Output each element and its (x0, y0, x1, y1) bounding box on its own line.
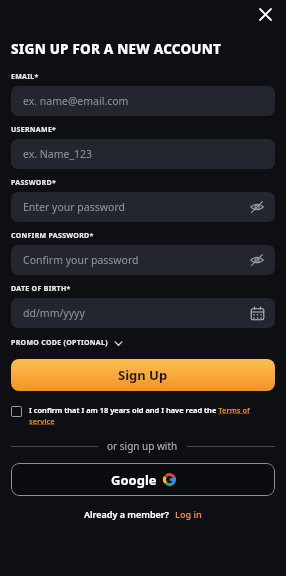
staticText: Log in (175, 508, 202, 520)
staticText: Google (111, 471, 157, 489)
staticText: PROMO CODE (OPTIONAL) (11, 338, 108, 348)
staticText: I confirm that I am 18 years old and I h… (29, 405, 275, 426)
staticText: PASSWORD* (11, 178, 57, 188)
staticText: CONFIRM PASSWORD* (11, 231, 94, 241)
button[interactable]: Enter your password (11, 192, 275, 222)
button[interactable]: Close (254, 3, 276, 25)
button[interactable]: Sign Up (11, 359, 275, 391)
button[interactable]: Show password (249, 252, 265, 268)
button[interactable]: dd/mm/yyyy (11, 298, 275, 328)
staticText: Enter your password (23, 200, 125, 214)
button[interactable]: PROMO CODE (OPTIONAL) (11, 338, 123, 348)
staticText: Confirm your password (23, 253, 139, 267)
button[interactable]: Log in (175, 508, 202, 520)
staticText: or sign up with (107, 439, 178, 453)
button[interactable]: Pick date (250, 306, 265, 321)
button[interactable]: I confirm that I am 18 years old and I h… (11, 405, 275, 426)
staticText: EMAIL* (11, 72, 39, 82)
staticText: dd/mm/yyyy (23, 306, 85, 320)
button[interactable]: ex. name@email.com (11, 86, 275, 116)
button[interactable]: Google (11, 463, 275, 496)
staticText: Already a member? (84, 508, 169, 520)
staticText: Sign Up (118, 366, 168, 384)
staticText: ex. name@email.com (23, 94, 129, 108)
staticText: SIGN UP FOR A NEW ACCOUNT (11, 40, 222, 58)
staticText: DATE OF BIRTH* (11, 284, 71, 294)
button[interactable]: Confirm your password (11, 245, 275, 275)
staticText: USERNAME* (11, 125, 57, 135)
staticText: ex. Name_123 (23, 147, 93, 161)
button[interactable]: ex. Name_123 (11, 139, 275, 169)
button[interactable]: Show password (249, 199, 265, 215)
